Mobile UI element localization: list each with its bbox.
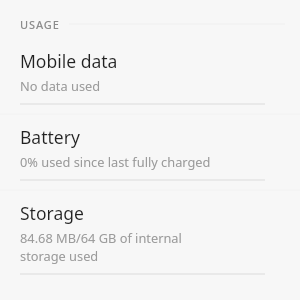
staticText: storage used	[20, 247, 99, 264]
staticText: Storage	[20, 201, 84, 225]
staticText: USAGE	[20, 17, 60, 31]
staticText: Battery	[20, 125, 80, 149]
button[interactable]: Mobile data	[0, 49, 300, 105]
staticText: 84.68 MB/64 GB of internal	[20, 229, 182, 246]
staticText: Mobile data	[20, 49, 118, 73]
staticText: 0% used since last fully charged	[20, 153, 211, 170]
button[interactable]: Battery	[0, 125, 300, 181]
button[interactable]: Storage	[0, 201, 300, 275]
staticText: No data used	[20, 77, 101, 94]
